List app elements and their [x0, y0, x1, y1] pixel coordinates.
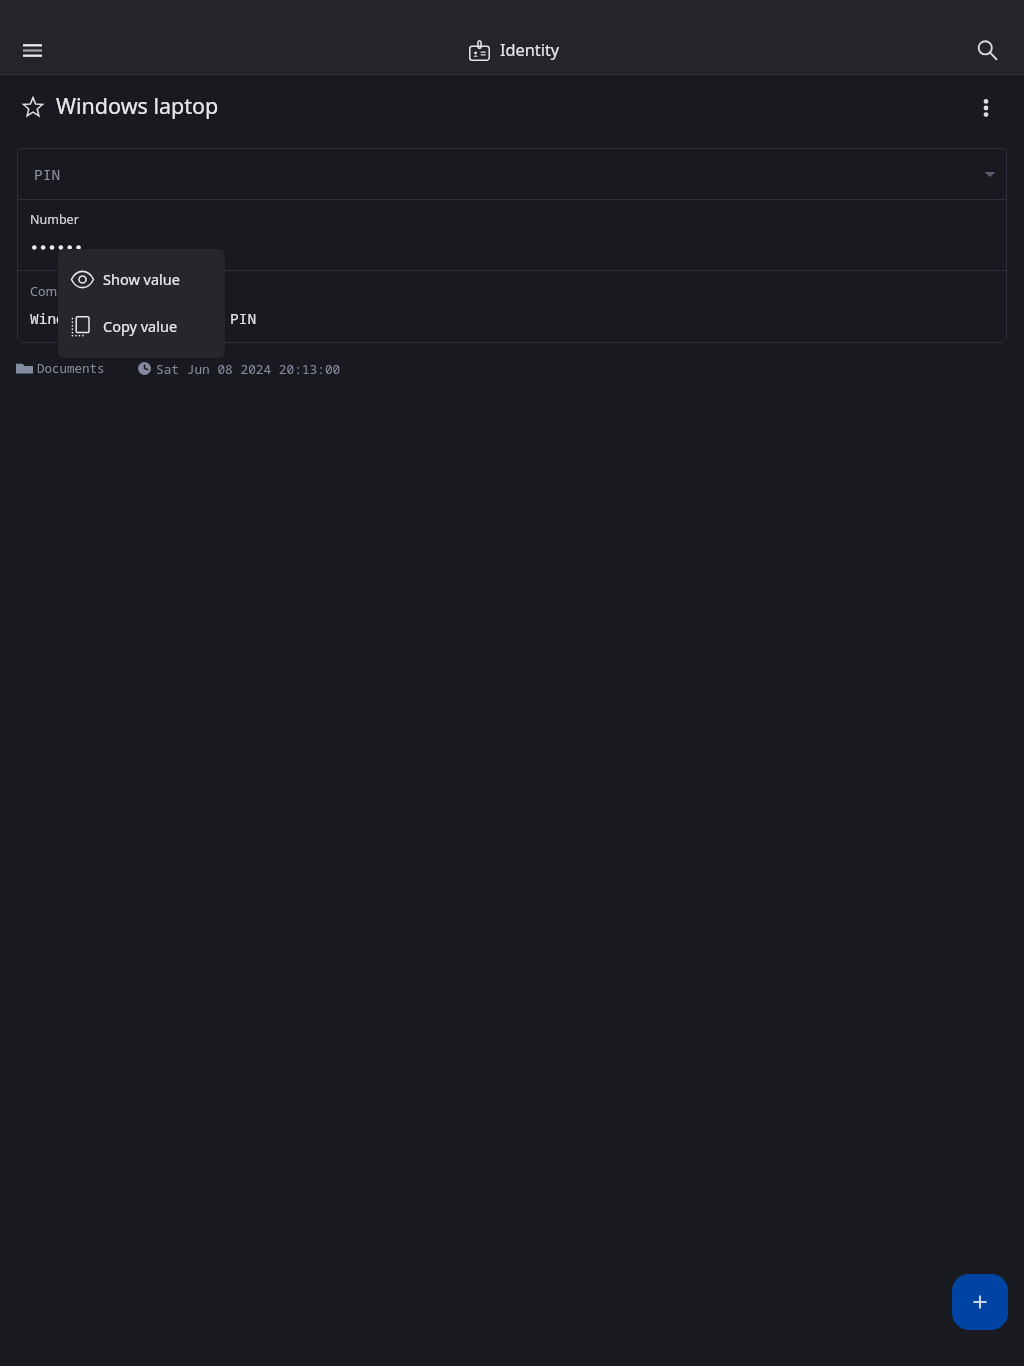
button[interactable]: Add new item [952, 1274, 1008, 1330]
staticText: Identity [500, 39, 560, 61]
staticText: Documents [37, 360, 105, 377]
button[interactable]: Add to favorites [14, 89, 52, 125]
button[interactable]: Copy value [58, 304, 225, 351]
button[interactable]: More options [962, 84, 1010, 132]
staticText: Show value [103, 269, 180, 289]
staticText: Comment [30, 283, 89, 300]
button[interactable]: Number [17, 200, 1007, 270]
button[interactable]: Search [963, 26, 1011, 74]
staticText: Copy value [103, 316, 178, 336]
button[interactable]: Comment [17, 271, 1007, 343]
button[interactable]: PIN [17, 148, 1007, 199]
staticText: Number [30, 211, 79, 228]
staticText: Sat Jun 08 2024 20:13:00 [156, 360, 341, 377]
button[interactable]: Open navigation menu [8, 26, 56, 74]
staticText: Windows laptop account PIN [30, 308, 257, 328]
staticText: Windows laptop [56, 91, 219, 120]
button[interactable]: Show value [58, 257, 225, 304]
staticText: PIN [34, 164, 61, 184]
